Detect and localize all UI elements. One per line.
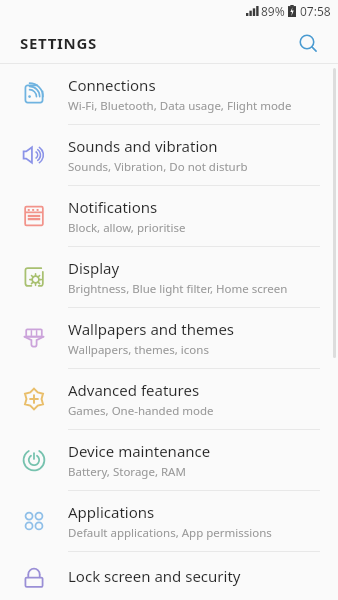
staticText: Games, One-handed mode xyxy=(68,403,214,419)
staticText: 89% xyxy=(261,3,285,19)
staticText: Connections xyxy=(68,75,156,95)
button[interactable]: Notifications xyxy=(0,186,338,246)
button[interactable]: Advanced features xyxy=(0,369,338,429)
staticText: Wallpapers, themes, icons xyxy=(68,342,209,358)
staticText: Device maintenance xyxy=(68,441,211,461)
staticText: 07:58 xyxy=(300,3,331,19)
staticText: Wallpapers and themes xyxy=(68,319,235,339)
button[interactable]: Sounds and vibration xyxy=(0,125,338,185)
staticText: Lock screen and security xyxy=(68,566,241,586)
staticText: Battery, Storage, RAM xyxy=(68,464,186,480)
staticText: Sounds and vibration xyxy=(68,136,218,156)
button[interactable]: Wallpapers and themes xyxy=(0,308,338,368)
staticText: Display xyxy=(68,258,120,278)
staticText: Applications xyxy=(68,502,155,522)
staticText: Wi-Fi, Bluetooth, Data usage, Flight mod… xyxy=(68,98,292,114)
staticText: Notifications xyxy=(68,197,158,217)
button[interactable]: Lock screen and security xyxy=(0,552,338,600)
staticText: Advanced features xyxy=(68,380,200,400)
button[interactable]: Display xyxy=(0,247,338,307)
button[interactable]: Device maintenance xyxy=(0,430,338,490)
staticText: Sounds, Vibration, Do not disturb xyxy=(68,159,248,175)
staticText: Block, allow, prioritise xyxy=(68,220,186,236)
button[interactable]: Search xyxy=(288,23,328,63)
staticText: Default applications, App permissions xyxy=(68,525,272,541)
staticText: SETTINGS xyxy=(20,33,98,53)
staticText: Brightness, Blue light filter, Home scre… xyxy=(68,281,288,297)
button[interactable]: Connections xyxy=(0,64,338,124)
button[interactable]: Applications xyxy=(0,491,338,551)
